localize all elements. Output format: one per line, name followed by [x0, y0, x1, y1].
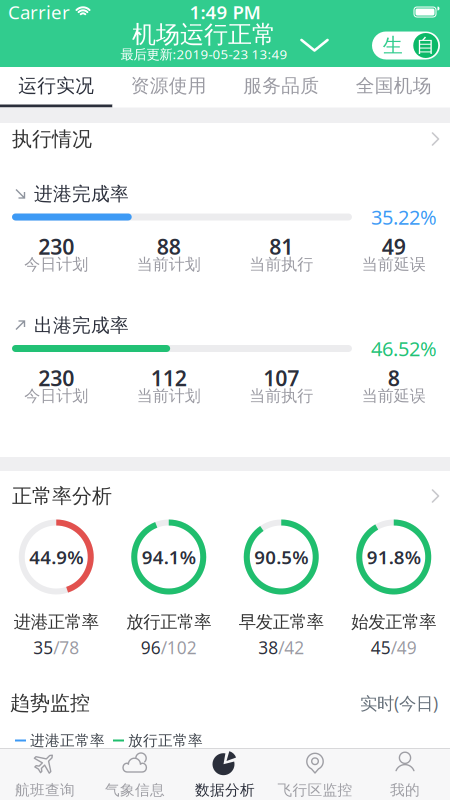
- button[interactable]: 正常率分析: [0, 480, 450, 512]
- staticText: 正常率分析: [12, 484, 112, 508]
- staticText: 气象信息: [105, 781, 165, 799]
- staticText: 早发正常率: [239, 611, 324, 633]
- staticText: 进港正常率: [14, 611, 99, 633]
- staticText: 107: [263, 364, 299, 392]
- button[interactable]: 气象信息: [90, 749, 180, 800]
- staticText: 当前执行: [249, 386, 313, 406]
- staticText: 始发正常率: [351, 611, 436, 633]
- button[interactable]: 航班查询: [0, 749, 90, 800]
- staticText: 49: [382, 232, 406, 261]
- staticText: 进港完成率: [34, 182, 129, 205]
- button[interactable]: 运行实况: [0, 67, 112, 107]
- button[interactable]: 展开: [299, 37, 329, 53]
- staticText: 38: [258, 636, 278, 659]
- staticText: 出港完成率: [34, 314, 129, 337]
- staticText: 趋势监控: [10, 691, 90, 715]
- staticText: /42: [278, 636, 304, 659]
- staticText: 服务品质: [243, 74, 319, 97]
- staticText: 35.22%: [371, 204, 437, 230]
- staticText: 放行正常率: [128, 731, 203, 749]
- staticText: 放行正常率: [126, 611, 211, 633]
- staticText: /49: [391, 636, 417, 659]
- staticText: 进港正常率: [30, 731, 105, 749]
- staticText: 230: [38, 232, 74, 261]
- staticText: 执行情况: [12, 127, 92, 151]
- staticText: 8: [388, 364, 400, 392]
- staticText: 35: [33, 636, 53, 659]
- button[interactable]: 我的: [360, 749, 450, 800]
- button[interactable]: 数据分析: [180, 749, 270, 800]
- staticText: 当前计划: [137, 255, 201, 274]
- staticText: 90.5%: [254, 545, 308, 569]
- staticText: 112: [151, 364, 187, 392]
- staticText: 今日计划: [24, 255, 88, 274]
- staticText: 机场运行正常: [132, 20, 276, 49]
- staticText: 1:49 PM: [189, 0, 260, 24]
- staticText: 91.8%: [367, 545, 421, 569]
- staticText: 45: [371, 636, 391, 659]
- staticText: 当前延误: [362, 255, 426, 274]
- staticText: 230: [38, 364, 74, 392]
- staticText: 运行实况: [18, 74, 94, 97]
- staticText: 当前执行: [249, 255, 313, 274]
- button[interactable]: 资源使用: [112, 67, 225, 107]
- staticText: 46.52%: [371, 335, 437, 362]
- staticText: 94.1%: [142, 545, 196, 569]
- staticText: 资源使用: [131, 74, 207, 97]
- staticText: 生: [383, 33, 403, 58]
- button[interactable]: 服务品质: [225, 67, 337, 107]
- staticText: /78: [53, 636, 79, 659]
- staticText: 当前计划: [137, 386, 201, 406]
- button[interactable]: 生/自 切换: [372, 31, 440, 59]
- staticText: 实时(今日): [360, 691, 438, 714]
- staticText: 今日计划: [24, 386, 88, 406]
- button[interactable]: 全国机场: [337, 67, 450, 107]
- staticText: 当前延误: [362, 386, 426, 406]
- staticText: Carrier: [8, 0, 70, 24]
- staticText: /102: [161, 636, 197, 659]
- button[interactable]: 执行情况: [0, 123, 450, 155]
- staticText: 81: [269, 232, 293, 261]
- staticText: 航班查询: [15, 781, 75, 799]
- staticText: 数据分析: [195, 781, 255, 799]
- staticText: 96: [141, 636, 161, 659]
- staticText: 44.9%: [29, 545, 83, 569]
- staticText: 88: [157, 232, 181, 261]
- staticText: 全国机场: [356, 74, 432, 97]
- staticText: 自: [416, 34, 435, 57]
- staticText: 我的: [390, 781, 420, 799]
- button[interactable]: 飞行区监控: [270, 749, 360, 800]
- staticText: 飞行区监控: [277, 781, 352, 799]
- staticText: 最后更新:2019-05-23 13:49: [120, 45, 287, 63]
